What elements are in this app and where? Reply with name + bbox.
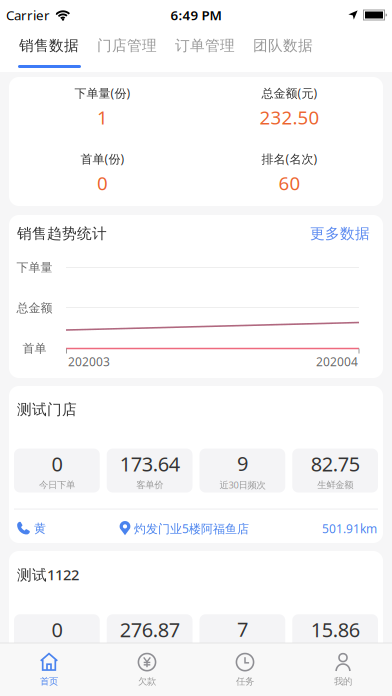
staticText: 0 xyxy=(97,171,108,195)
staticText: 0 xyxy=(51,616,62,643)
staticText: 首页 xyxy=(40,676,58,687)
staticText: 6:49 PM xyxy=(170,6,221,24)
staticText: 276.87 xyxy=(120,616,180,643)
staticText: 202003 xyxy=(68,353,110,369)
staticText: 下单量(份) xyxy=(74,85,130,101)
button[interactable]: 门店地址 xyxy=(119,520,249,536)
staticText: 黄 xyxy=(34,521,46,536)
staticText: 15.86 xyxy=(311,616,360,643)
staticText: 1 xyxy=(97,105,108,130)
staticText: 173.64 xyxy=(120,450,180,477)
staticText: 测试1122 xyxy=(17,565,79,584)
staticText: 团队数据 xyxy=(253,36,313,54)
button[interactable]: 门店管理 xyxy=(95,37,159,54)
staticText: 近30日频次 xyxy=(219,479,265,491)
staticText: 7 xyxy=(237,616,248,642)
staticText: 任务 xyxy=(236,676,254,687)
staticText: 客单价 xyxy=(136,645,163,656)
button[interactable]: 任务 xyxy=(196,643,294,696)
staticText: 60 xyxy=(278,171,300,195)
staticText: 测试门店 xyxy=(17,400,77,418)
staticText: 0 xyxy=(51,450,62,477)
staticText: 今日下单 xyxy=(39,645,75,656)
button[interactable]: 拨打电话 xyxy=(16,521,46,536)
staticText: 近30日频次 xyxy=(219,644,265,657)
staticText: 总金额(元) xyxy=(261,85,317,101)
button[interactable]: 欠款 xyxy=(98,643,196,696)
staticText: 生鲜金额 xyxy=(317,479,353,491)
button[interactable]: 团队数据 xyxy=(251,37,315,54)
staticText: 首单(份) xyxy=(80,151,124,167)
staticText: 下单量 xyxy=(16,260,52,275)
staticText: Carrier xyxy=(6,6,50,24)
button[interactable]: 更多数据 xyxy=(310,224,370,242)
button[interactable]: 首页 xyxy=(0,643,98,696)
staticText: 82.75 xyxy=(311,450,360,477)
staticText: 我的 xyxy=(334,676,352,687)
button[interactable]: 订单管理 xyxy=(173,37,237,54)
staticText: 销售趋势统计 xyxy=(17,224,107,242)
staticText: 今日下单 xyxy=(39,479,75,491)
staticText: 生鲜金额 xyxy=(317,645,353,656)
staticText: 欠款 xyxy=(138,676,156,687)
staticText: 门店管理 xyxy=(97,36,157,54)
button[interactable]: 销售数据 xyxy=(17,37,81,54)
staticText: 排名(名次) xyxy=(261,151,317,167)
staticText: 销售数据 xyxy=(19,36,79,54)
staticText: 客单价 xyxy=(136,479,163,491)
staticText: 501.91km xyxy=(322,520,377,536)
button[interactable]: 我的 xyxy=(294,643,392,696)
staticText: 总金额 xyxy=(16,301,52,315)
staticText: 首单 xyxy=(22,341,46,356)
staticText: 灼发门业5楼阿福鱼店 xyxy=(134,520,249,536)
staticText: 更多数据 xyxy=(310,224,370,242)
staticText: 202004 xyxy=(316,353,358,369)
staticText: 9 xyxy=(237,450,248,477)
staticText: 订单管理 xyxy=(175,36,235,54)
staticText: 232.50 xyxy=(259,105,319,130)
